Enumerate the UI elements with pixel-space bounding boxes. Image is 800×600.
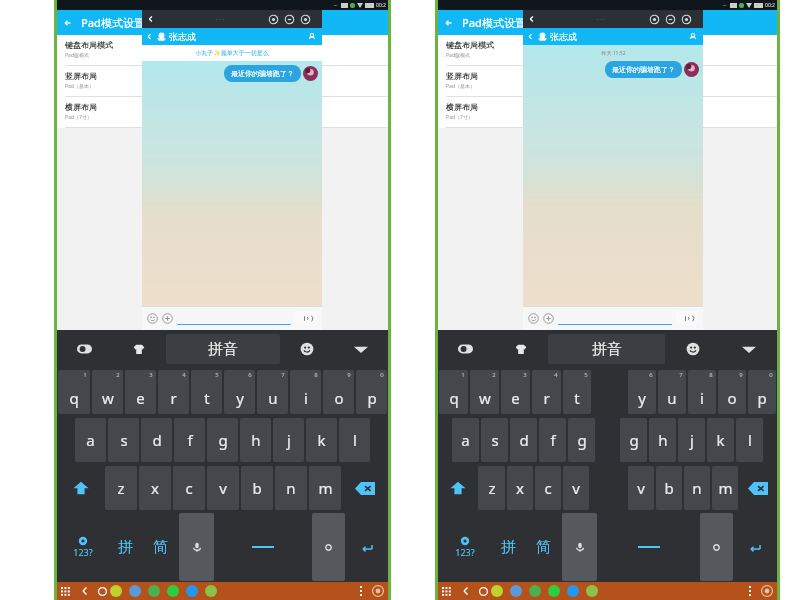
button[interactable]: v [207, 466, 239, 510]
button[interactable]: v [563, 466, 589, 510]
button[interactable]: 拼 [491, 512, 526, 582]
button[interactable]: Theme [493, 330, 548, 368]
button[interactable]: Space [215, 512, 311, 582]
button[interactable] [558, 311, 672, 325]
button[interactable]: m [712, 466, 738, 510]
button[interactable]: Backspace [739, 464, 777, 512]
button[interactable]: l [736, 418, 763, 462]
button[interactable]: Hide keyboard [334, 330, 388, 368]
button[interactable]: 横屏布局 [57, 97, 388, 128]
button[interactable]: App [167, 585, 179, 597]
button[interactable]: 3 [125, 370, 156, 414]
button[interactable]: 3 [501, 370, 530, 414]
button[interactable]: 5 [191, 370, 222, 414]
button[interactable]: l [339, 418, 370, 462]
button[interactable]: Home [98, 587, 107, 596]
button[interactable]: App [205, 585, 217, 597]
button[interactable]: Emoji [147, 313, 158, 324]
button[interactable]: v [628, 466, 654, 510]
button[interactable]: z [478, 466, 505, 510]
button[interactable]: 123? [438, 512, 491, 582]
button[interactable]: 拼音 [548, 334, 665, 364]
button[interactable]: 8 [290, 370, 321, 414]
button[interactable]: 最近你的骗墙跑了？ [224, 65, 301, 82]
button[interactable]: Emoji [528, 313, 539, 324]
button[interactable]: Home [479, 587, 488, 596]
button[interactable]: App [586, 585, 598, 597]
button[interactable]: f [174, 418, 205, 462]
button[interactable]: Emoji [665, 330, 721, 368]
button[interactable]: Back [57, 10, 388, 35]
button[interactable]: h [240, 418, 271, 462]
button[interactable]: App [548, 585, 560, 597]
button[interactable]: Enter [734, 512, 777, 582]
button[interactable]: s [481, 418, 508, 462]
button[interactable] [700, 513, 733, 581]
button[interactable]: 6 [628, 370, 656, 414]
button[interactable]: g [620, 418, 647, 462]
button[interactable]: 9 [718, 370, 746, 414]
button[interactable]: 拼音 [166, 334, 280, 364]
button[interactable]: Voice input [179, 513, 214, 581]
button[interactable]: 简 [526, 512, 561, 582]
button[interactable]: 拼 [108, 512, 143, 582]
button[interactable]: Go [57, 330, 112, 368]
button[interactable]: 4 [532, 370, 561, 414]
button[interactable]: b [241, 466, 273, 510]
button[interactable]: App [491, 585, 503, 597]
button[interactable]: Back [80, 586, 90, 596]
button[interactable]: z [105, 466, 137, 510]
button[interactable]: Shift [57, 464, 104, 512]
button[interactable]: j [678, 418, 705, 462]
button[interactable]: App [129, 585, 141, 597]
button[interactable]: s [108, 418, 139, 462]
button[interactable]: a [452, 418, 479, 462]
button[interactable]: 6 [224, 370, 255, 414]
button[interactable]: App [567, 585, 579, 597]
button[interactable]: 2 [470, 370, 499, 414]
button[interactable]: j [273, 418, 304, 462]
button[interactable]: Go [438, 330, 493, 368]
button[interactable]: Theme [112, 330, 166, 368]
button[interactable]: x [139, 466, 171, 510]
button[interactable] [177, 311, 291, 325]
button[interactable]: 键盘布局模式 [57, 35, 388, 66]
button[interactable]: b [656, 466, 682, 510]
button[interactable]: Backspace [342, 464, 388, 512]
button[interactable]: 竖屏布局 [57, 66, 388, 97]
button[interactable]: n [684, 466, 710, 510]
button[interactable]: 123? [57, 512, 108, 582]
button[interactable]: Shift [438, 464, 477, 512]
button[interactable] [684, 62, 699, 77]
button[interactable]: 简 [143, 512, 178, 582]
button[interactable]: a [75, 418, 106, 462]
button[interactable]: 竖屏布局 [438, 66, 777, 97]
button[interactable]: Screenshot [761, 585, 773, 597]
button[interactable]: App [529, 585, 541, 597]
button[interactable]: m [309, 466, 341, 510]
button[interactable]: More [749, 586, 751, 596]
button[interactable]: 1 [58, 370, 90, 414]
button[interactable]: g [207, 418, 238, 462]
button[interactable]: Space [598, 512, 699, 582]
button[interactable]: Voice input [562, 513, 597, 581]
button[interactable]: k [306, 418, 337, 462]
button[interactable]: Screenshot [372, 585, 384, 597]
button[interactable] [303, 66, 318, 81]
button[interactable]: 0 [748, 370, 776, 414]
button[interactable]: 键盘布局模式 [438, 35, 777, 66]
button[interactable]: Add [543, 313, 554, 324]
button[interactable]: 7 [658, 370, 686, 414]
button[interactable]: f [539, 418, 566, 462]
button[interactable]: Apps [61, 587, 70, 596]
button[interactable]: Voice [295, 311, 317, 325]
button[interactable]: 9 [323, 370, 354, 414]
button[interactable]: Back [461, 586, 471, 596]
button[interactable]: 0 [356, 370, 387, 414]
button[interactable]: 7 [257, 370, 288, 414]
button[interactable]: Apps [442, 587, 451, 596]
button[interactable]: d [510, 418, 537, 462]
button[interactable]: 1 [439, 370, 468, 414]
button[interactable] [312, 513, 345, 581]
button[interactable]: n [275, 466, 307, 510]
